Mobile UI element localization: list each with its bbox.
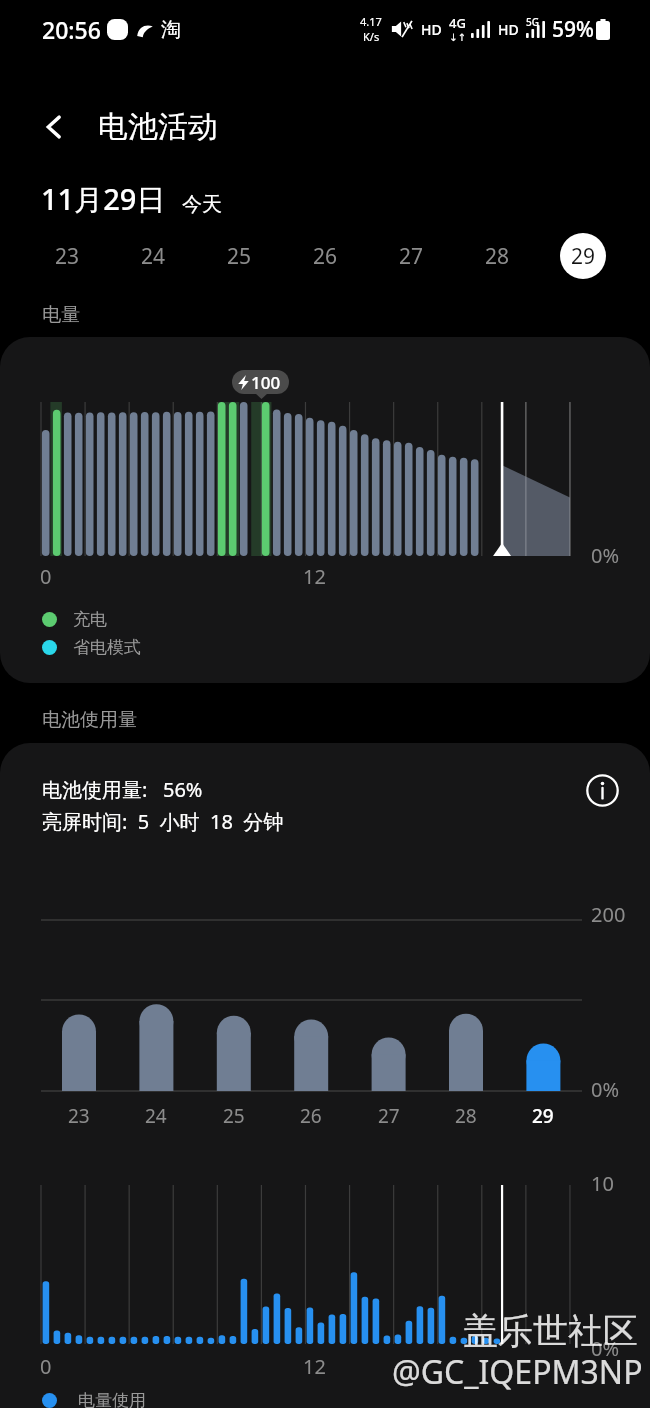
staticText: 29	[571, 242, 596, 271]
staticText: ↓↑	[449, 32, 466, 44]
staticText: 27	[378, 1103, 400, 1129]
staticText: 11月29日	[41, 179, 166, 219]
staticText: 25	[223, 1103, 245, 1129]
button[interactable]: 24	[110, 230, 196, 282]
staticText: @GC_IQEPM3NP	[392, 1350, 643, 1394]
staticText: K/s	[363, 29, 380, 44]
staticText: 电量使用	[78, 1390, 146, 1408]
staticText: 4G	[449, 14, 466, 32]
staticText: 24	[141, 242, 166, 271]
staticText: 12	[303, 563, 326, 590]
staticText: 26	[313, 242, 338, 271]
staticText: 盖乐世社区	[463, 1309, 638, 1353]
staticText: 淘	[161, 17, 181, 42]
staticText: 亮屏时间: 5 小时 18 分钟	[42, 808, 284, 835]
staticText: 12	[303, 1353, 326, 1380]
staticText: 0	[40, 1353, 52, 1380]
staticText: 0	[40, 563, 52, 590]
staticText: HD	[421, 20, 442, 39]
staticText: 电池活动	[98, 108, 218, 146]
staticText: 20:56	[42, 14, 101, 45]
staticText: 电池使用量: 56%	[42, 776, 203, 803]
staticText: 28	[485, 242, 510, 271]
button[interactable]: 返回	[30, 103, 78, 151]
staticText: 4.17	[360, 14, 382, 29]
staticText: 电池使用量	[42, 708, 137, 732]
staticText: 26	[300, 1103, 322, 1129]
staticText: 28	[455, 1103, 477, 1129]
button[interactable]: 29	[540, 230, 626, 282]
button[interactable]: 27	[368, 230, 454, 282]
staticText: 10	[591, 1170, 614, 1197]
staticText: HD	[498, 20, 519, 39]
staticText: 100	[251, 371, 281, 394]
staticText: 0%	[591, 1076, 620, 1103]
staticText: 5G	[526, 15, 539, 29]
staticText: 200	[591, 901, 626, 928]
staticText: 0%	[591, 1335, 620, 1362]
button[interactable]: 信息	[582, 770, 622, 810]
staticText: 电量	[42, 303, 80, 327]
staticText: 27	[399, 242, 424, 271]
staticText: 25	[227, 242, 252, 271]
staticText: 省电模式	[73, 637, 141, 658]
staticText: 23	[68, 1103, 90, 1129]
staticText: 23	[55, 242, 80, 271]
staticText: 59%	[552, 15, 594, 44]
button[interactable]: 25	[196, 230, 282, 282]
staticText: 充电	[73, 609, 107, 630]
staticText: 24	[145, 1103, 167, 1129]
button[interactable]: 26	[282, 230, 368, 282]
button[interactable]: 23	[24, 230, 110, 282]
staticText: 29	[532, 1103, 554, 1129]
staticText: 0%	[591, 542, 620, 569]
staticText: 今天	[182, 192, 222, 217]
button[interactable]: 28	[454, 230, 540, 282]
